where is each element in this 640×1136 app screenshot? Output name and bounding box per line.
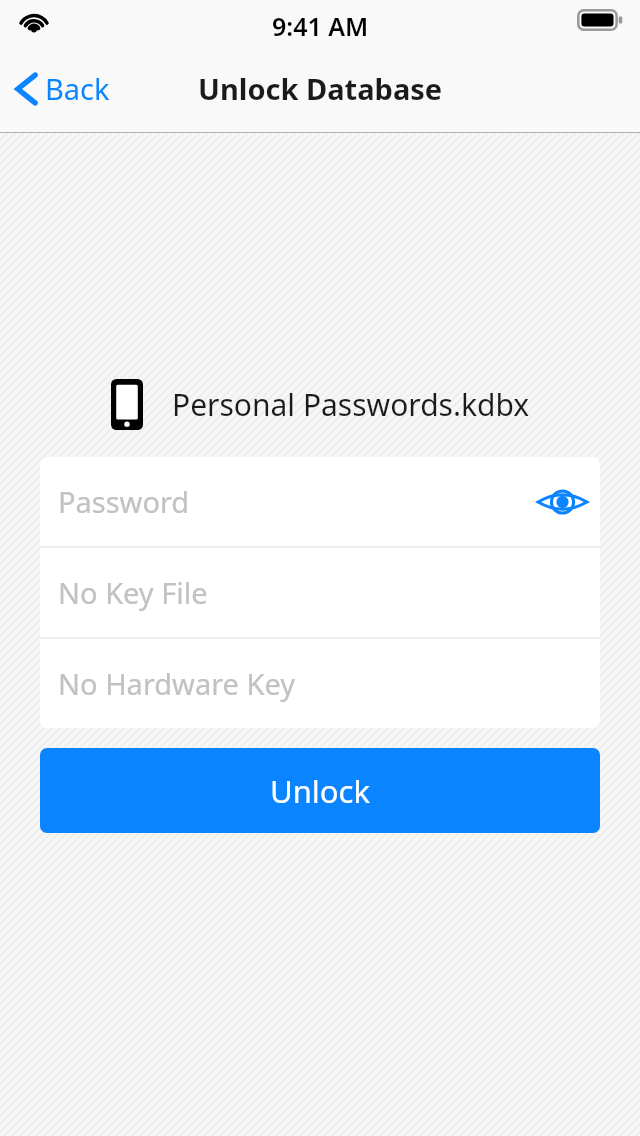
button[interactable]: Back <box>0 44 124 133</box>
button[interactable]: No Hardware Key <box>40 639 600 728</box>
staticText: Personal Passwords.kdbx <box>172 384 530 425</box>
button[interactable]: Unlock <box>40 748 600 833</box>
staticText: Unlock Database <box>198 69 443 108</box>
staticText: Password <box>58 482 190 521</box>
button[interactable]: Password <box>40 457 600 546</box>
staticText: No Hardware Key <box>58 664 295 703</box>
button[interactable]: No Key File <box>40 548 600 637</box>
staticText: No Key File <box>58 573 208 612</box>
staticText: Unlock <box>270 770 371 812</box>
staticText: 9:41 AM <box>272 9 369 43</box>
button[interactable]: Show password <box>530 472 594 532</box>
staticText: Back <box>45 69 110 108</box>
